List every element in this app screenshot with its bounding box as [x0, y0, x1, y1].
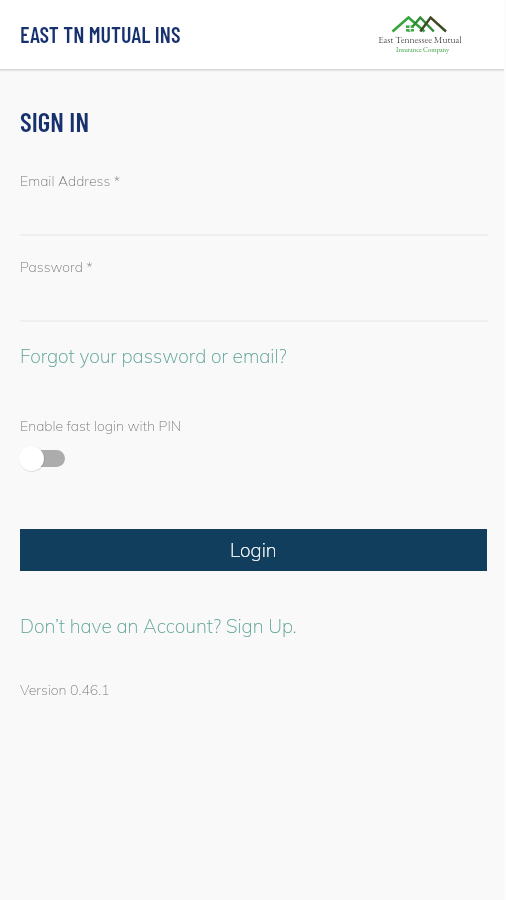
staticText: SIGN IN	[20, 105, 90, 137]
button[interactable]: Enable fast login with PIN	[19, 444, 81, 472]
button[interactable]: Forgot your password or email?	[20, 344, 287, 368]
button[interactable]: Login	[20, 529, 487, 571]
staticText: Version 0.46.1	[20, 681, 110, 699]
staticText: EAST TN MUTUAL INS	[20, 21, 181, 47]
staticText: Password *	[20, 258, 93, 276]
staticText: East Tennessee Mutual	[378, 33, 462, 46]
staticText: Insurance Company	[396, 45, 449, 54]
staticText: Email Address *	[20, 172, 121, 190]
staticText: Login	[230, 538, 277, 562]
button[interactable]: Don’t have an Account? Sign Up.	[20, 614, 297, 638]
staticText: Enable fast login with PIN	[20, 417, 182, 435]
